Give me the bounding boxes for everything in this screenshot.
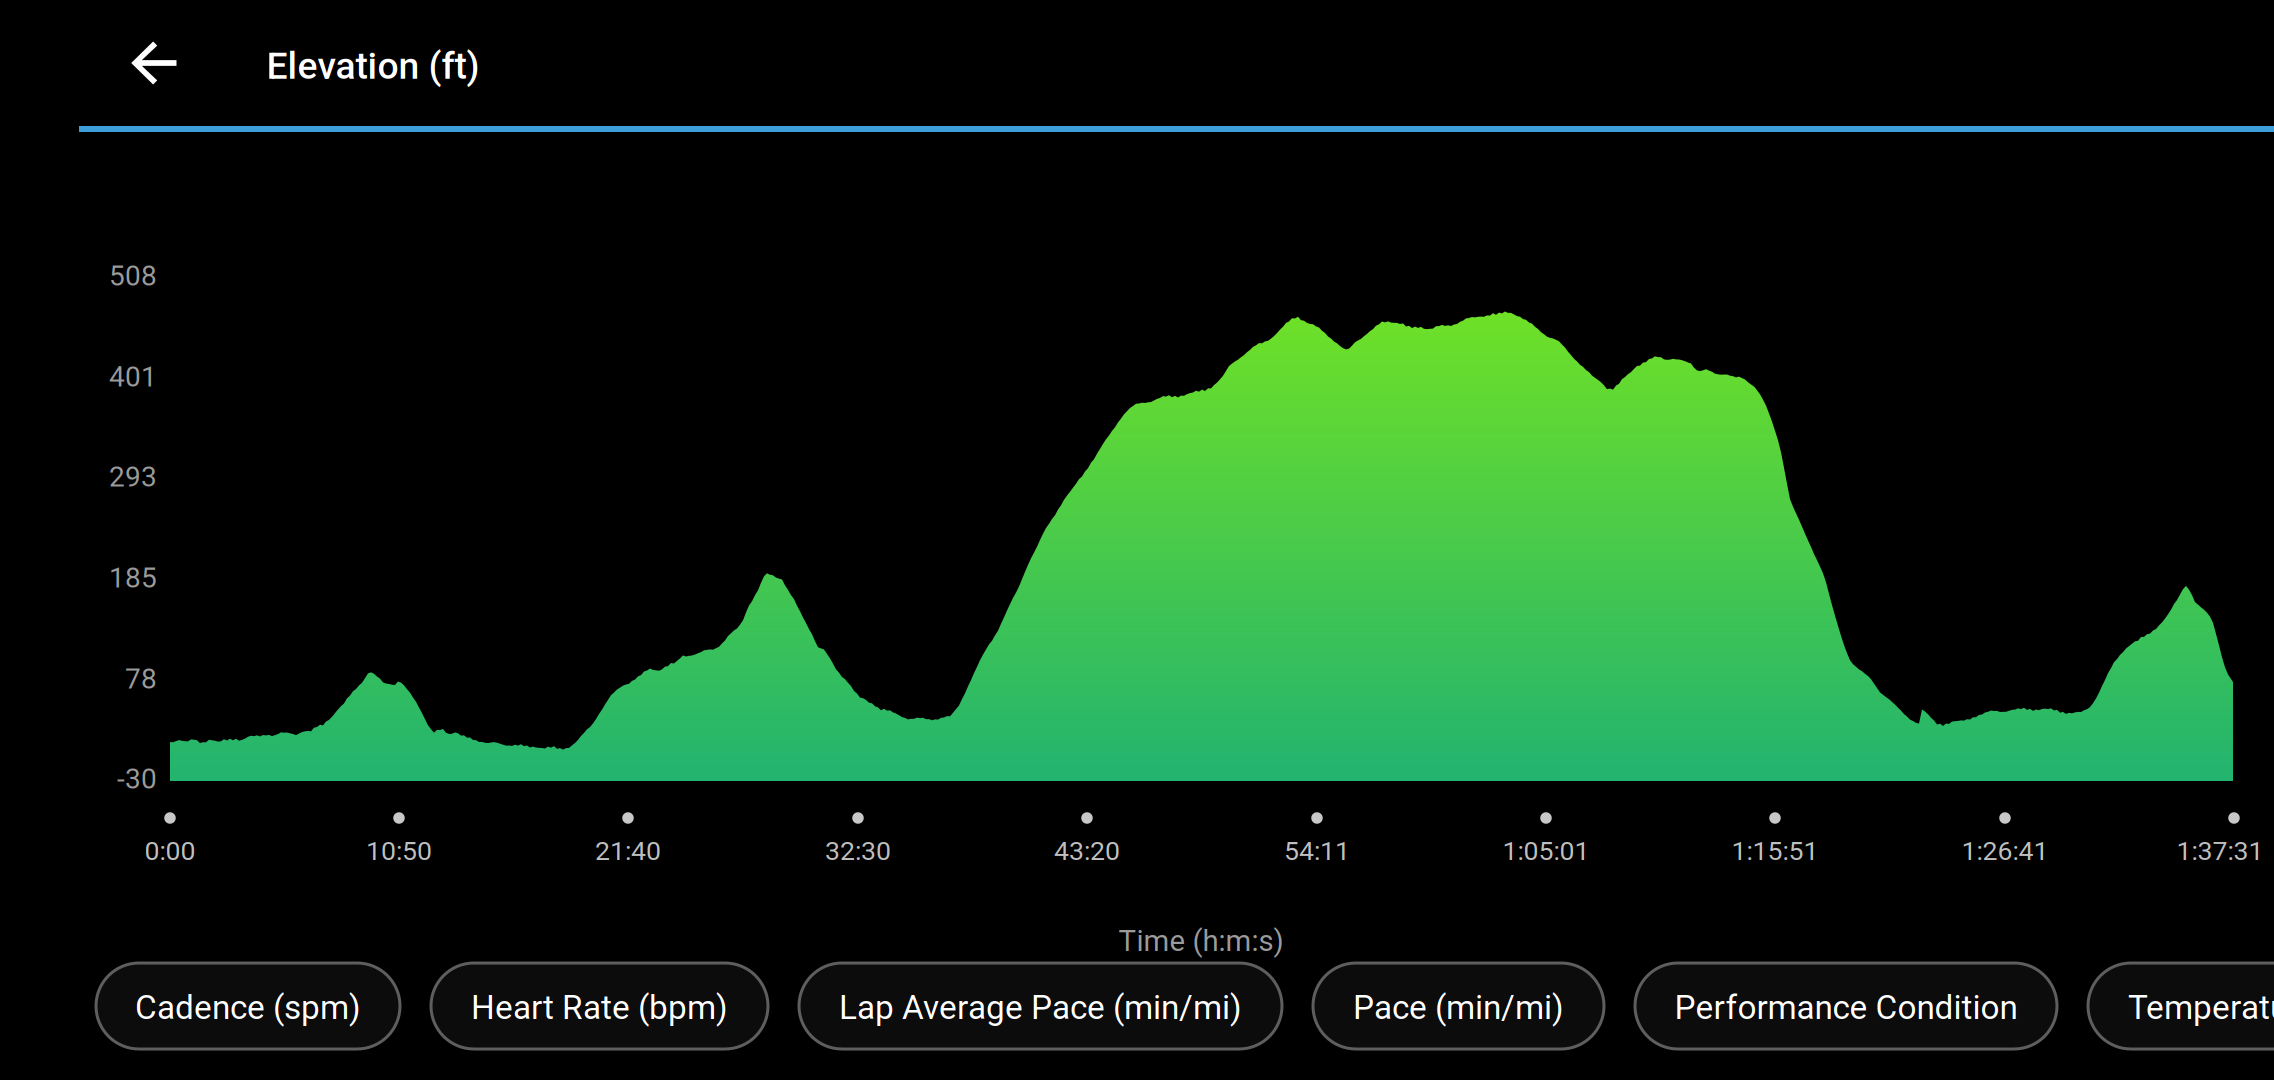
- staticText: 1:26:41: [1961, 835, 2048, 867]
- staticText: 1:37:31: [2176, 835, 2263, 867]
- button[interactable]: Performance Condition: [1635, 963, 2057, 1049]
- button[interactable]: Heart Rate (bpm): [431, 963, 768, 1049]
- staticText: Cadence (spm): [135, 988, 361, 1027]
- staticText: 21:40: [595, 835, 661, 867]
- button[interactable]: Cadence (spm): [96, 963, 400, 1049]
- staticText: 0:00: [144, 835, 195, 867]
- staticText: Performance Condition: [1674, 988, 2017, 1027]
- button[interactable]: Pace (min/mi): [1313, 963, 1604, 1049]
- staticText: Pace (min/mi): [1353, 988, 1564, 1027]
- staticText: Time (h:m:s): [1118, 924, 1283, 958]
- staticText: -30: [117, 763, 157, 795]
- button[interactable]: Temperature: [2088, 963, 2274, 1049]
- staticText: 32:30: [825, 835, 891, 867]
- staticText: Heart Rate (bpm): [471, 988, 728, 1027]
- staticText: 185: [109, 562, 157, 594]
- staticText: 401: [109, 361, 157, 393]
- staticText: 10:50: [366, 835, 432, 867]
- button[interactable]: Lap Average Pace (min/mi): [799, 963, 1282, 1049]
- button[interactable]: Back: [109, 15, 205, 111]
- staticText: 78: [125, 663, 157, 695]
- staticText: Temperature: [2128, 988, 2274, 1027]
- staticText: Elevation (ft): [266, 44, 479, 88]
- staticText: 1:15:51: [1731, 835, 1818, 867]
- staticText: Lap Average Pace (min/mi): [839, 988, 1242, 1027]
- staticText: 54:11: [1284, 835, 1350, 867]
- staticText: 1:05:01: [1502, 835, 1589, 867]
- staticText: 43:20: [1054, 835, 1120, 867]
- staticText: 508: [109, 260, 157, 292]
- staticText: 293: [109, 461, 157, 493]
